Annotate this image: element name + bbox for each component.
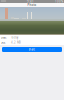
staticText: 4.2 MB — [11, 41, 21, 44]
staticText: 100% — [55, 0, 63, 3]
staticText: Share — [28, 48, 35, 51]
staticText: Today — [11, 36, 18, 39]
staticText: Date — [1, 36, 7, 39]
staticText: Size — [1, 41, 6, 44]
staticText: Photo — [27, 3, 36, 7]
button[interactable]: Share — [2, 47, 62, 52]
staticText: ••••• — [1, 0, 6, 3]
staticText: 9:41 — [27, 0, 34, 3]
